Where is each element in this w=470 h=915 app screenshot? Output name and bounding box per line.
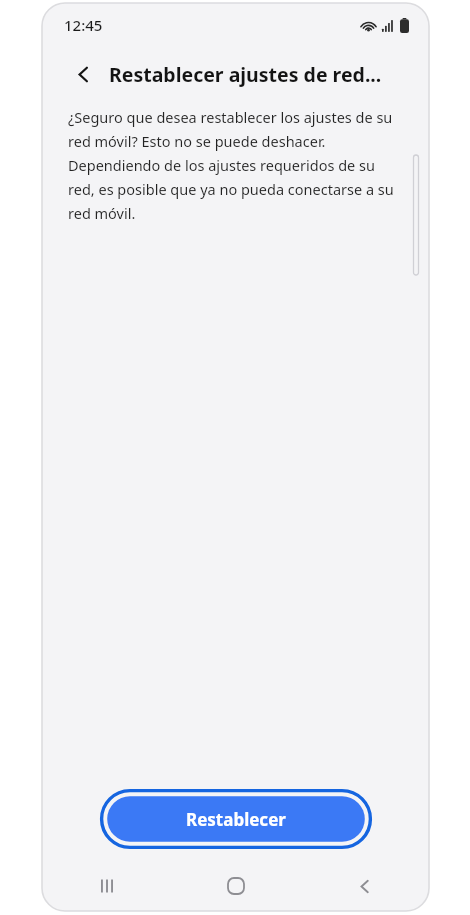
staticText: Restablecer	[186, 808, 286, 831]
staticText: Restablecer ajustes de red...	[109, 61, 382, 88]
button[interactable]: Recents	[42, 861, 171, 911]
button[interactable]: Back	[300, 861, 429, 911]
staticText: ¿Seguro que desea restablecer los ajuste…	[68, 107, 405, 223]
button[interactable]: Restablecer	[100, 789, 372, 849]
button[interactable]: Back	[68, 59, 98, 89]
staticText: 12:45	[64, 15, 103, 35]
button[interactable]: Home	[171, 861, 300, 911]
